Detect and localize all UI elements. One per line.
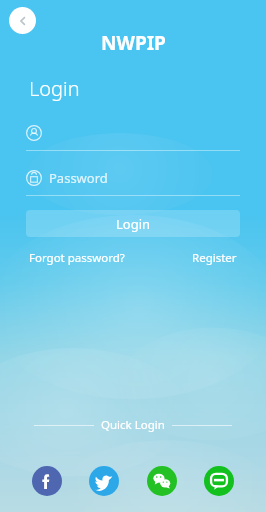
button[interactable]: WeChat xyxy=(147,466,177,496)
button[interactable]: Login xyxy=(26,210,240,237)
button[interactable]: LINE xyxy=(204,466,234,496)
button[interactable]: Twitter xyxy=(89,466,119,496)
staticText: Quick Login xyxy=(101,417,165,433)
button[interactable]: Back xyxy=(9,7,36,34)
staticText: Register xyxy=(192,250,237,266)
button[interactable]: Register xyxy=(192,250,237,266)
staticText: NWPIP xyxy=(101,30,166,56)
button[interactable]: Facebook xyxy=(32,466,62,496)
staticText: Password xyxy=(49,169,108,187)
staticText: Forgot password? xyxy=(29,250,125,266)
button[interactable]: Forgot password? xyxy=(29,250,125,266)
button[interactable]: Password xyxy=(26,165,240,191)
button[interactable] xyxy=(26,120,240,146)
staticText: Login xyxy=(116,215,151,233)
staticText: Login xyxy=(29,75,80,102)
